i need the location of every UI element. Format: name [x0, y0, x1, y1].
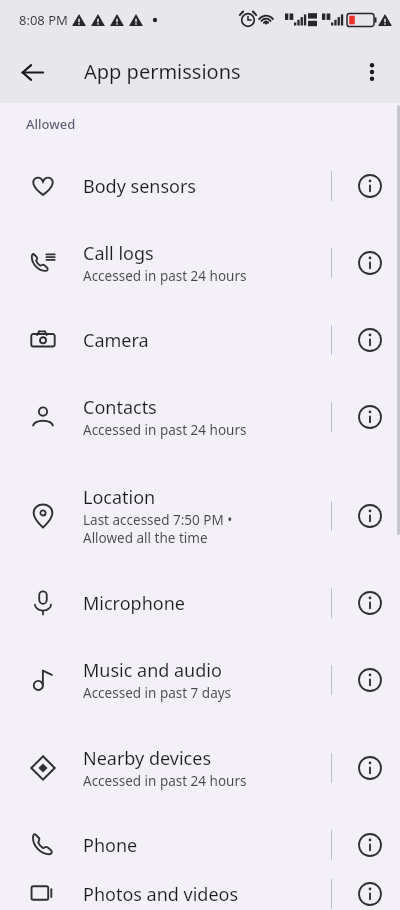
button[interactable]: About Contacts permission: [340, 373, 400, 461]
button[interactable]: Back: [8, 48, 56, 96]
button[interactable]: Body sensors: [0, 153, 400, 219]
button[interactable]: Music and audio: [0, 636, 400, 724]
button[interactable]: About Music and audio permission: [340, 636, 400, 724]
staticText: Accessed in past 24 hours: [83, 421, 247, 439]
button[interactable]: Call logs: [0, 219, 400, 307]
button[interactable]: About Location permission: [340, 461, 400, 570]
button[interactable]: Phone: [0, 812, 400, 878]
staticText: Contacts: [83, 395, 157, 420]
button[interactable]: Microphone: [0, 570, 400, 636]
staticText: Body sensors: [83, 174, 196, 199]
button[interactable]: About Microphone permission: [340, 570, 400, 636]
staticText: Photos and videos: [83, 882, 239, 907]
button[interactable]: About Body sensors permission: [340, 153, 400, 219]
staticText: Accessed in past 7 days: [83, 684, 232, 702]
staticText: Phone: [83, 833, 138, 858]
staticText: Location: [83, 485, 156, 510]
button[interactable]: Location: [0, 461, 400, 570]
button[interactable]: Camera: [0, 307, 400, 373]
button[interactable]: About Phone permission: [340, 812, 400, 878]
staticText: Music and audio: [83, 658, 222, 683]
button[interactable]: More options: [348, 48, 396, 96]
staticText: Accessed in past 24 hours: [83, 772, 247, 790]
staticText: App permissions: [84, 58, 241, 85]
staticText: Camera: [83, 328, 149, 353]
button[interactable]: Photos and videos: [0, 878, 400, 910]
staticText: Nearby devices: [83, 746, 211, 771]
button[interactable]: Nearby devices: [0, 724, 400, 812]
button[interactable]: About Photos and videos permission: [340, 878, 400, 910]
button[interactable]: Contacts: [0, 373, 400, 461]
staticText: Accessed in past 24 hours: [83, 267, 247, 285]
button[interactable]: About Call logs permission: [340, 219, 400, 307]
staticText: 8:08 PM: [19, 11, 68, 29]
staticText: Microphone: [83, 591, 185, 616]
staticText: Allowed: [26, 115, 76, 133]
button[interactable]: About Nearby devices permission: [340, 724, 400, 812]
staticText: Last accessed 7:50 PM • Allowed all the …: [83, 511, 233, 547]
staticText: Call logs: [83, 241, 154, 266]
button[interactable]: About Camera permission: [340, 307, 400, 373]
